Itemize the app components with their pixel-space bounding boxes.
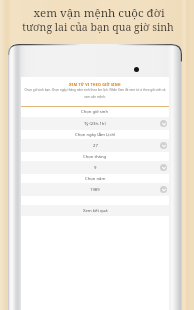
staticText: Tý (23h-1h) <box>84 121 106 127</box>
staticText: 1989 <box>90 187 100 193</box>
staticText: xem vận mệnh cuộc đời <box>33 5 165 21</box>
staticText: 9 <box>94 165 97 171</box>
staticText: Chọn tháng <box>83 154 107 160</box>
staticText: 27 <box>93 143 98 149</box>
button[interactable]: Chọn ngày <box>21 139 169 152</box>
staticText: Chọn giờ sinh bạn. Chọn ngày tháng năm s… <box>22 88 168 99</box>
staticText: Chọn ngày (Âm Lịch) <box>75 132 116 138</box>
staticText: Chọn năm <box>85 176 106 182</box>
button[interactable]: Chọn tháng <box>21 161 169 174</box>
staticText: tương lai của bạn qua giờ sinh <box>22 20 174 34</box>
button[interactable]: Xem kết quả <box>21 205 169 216</box>
button[interactable]: Chọn giờ sinh <box>21 117 169 130</box>
staticText: Chọn giờ sinh <box>81 109 109 115</box>
button[interactable]: Chọn năm <box>21 183 169 196</box>
staticText: Xem kết quả <box>83 208 108 214</box>
staticText: XEM TỬ VI THEO GIỜ SINH <box>69 82 121 87</box>
